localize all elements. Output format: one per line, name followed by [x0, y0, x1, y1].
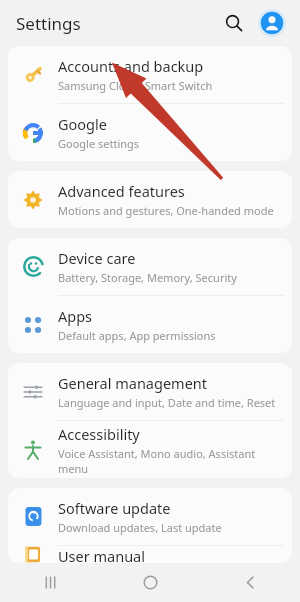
- staticText: Battery, Storage, Memory, Security: [58, 270, 237, 285]
- button[interactable]: Software update: [8, 488, 292, 545]
- button[interactable]: Home: [100, 563, 200, 602]
- staticText: General management: [58, 373, 208, 393]
- staticText: Default apps, App permissions: [58, 328, 216, 343]
- button[interactable]: Accounts and backup: [8, 46, 292, 103]
- staticText: Accessibility: [58, 424, 140, 444]
- staticText: Google: [58, 114, 107, 134]
- button[interactable]: Back: [200, 563, 300, 602]
- button[interactable]: Accessibility: [8, 421, 292, 478]
- staticText: Motions and gestures, One-handed mode: [58, 203, 274, 218]
- staticText: Software update: [58, 498, 171, 518]
- button[interactable]: Apps: [8, 296, 292, 353]
- staticText: Samsung Cloud, Smart Switch: [58, 78, 213, 93]
- staticText: Accounts and backup: [58, 56, 204, 76]
- button[interactable]: Account: [256, 7, 288, 39]
- button[interactable]: Advanced features: [8, 171, 292, 228]
- staticText: Google settings: [58, 136, 140, 151]
- staticText: Apps: [58, 306, 93, 326]
- staticText: Advanced features: [58, 181, 185, 201]
- button[interactable]: Search: [218, 7, 250, 39]
- staticText: Device care: [58, 248, 136, 268]
- button[interactable]: Device care: [8, 238, 292, 295]
- staticText: Language and input, Date and time, Reset: [58, 395, 276, 410]
- button[interactable]: User manual: [8, 546, 292, 563]
- staticText: Download updates, Last update: [58, 520, 222, 535]
- button[interactable]: Google: [8, 104, 292, 161]
- staticText: Settings: [16, 12, 81, 35]
- staticText: User manual: [58, 546, 145, 563]
- button[interactable]: General management: [8, 363, 292, 420]
- staticText: Voice Assistant, Mono audio, Assistant m…: [58, 446, 282, 476]
- button[interactable]: Recent apps: [0, 563, 100, 602]
